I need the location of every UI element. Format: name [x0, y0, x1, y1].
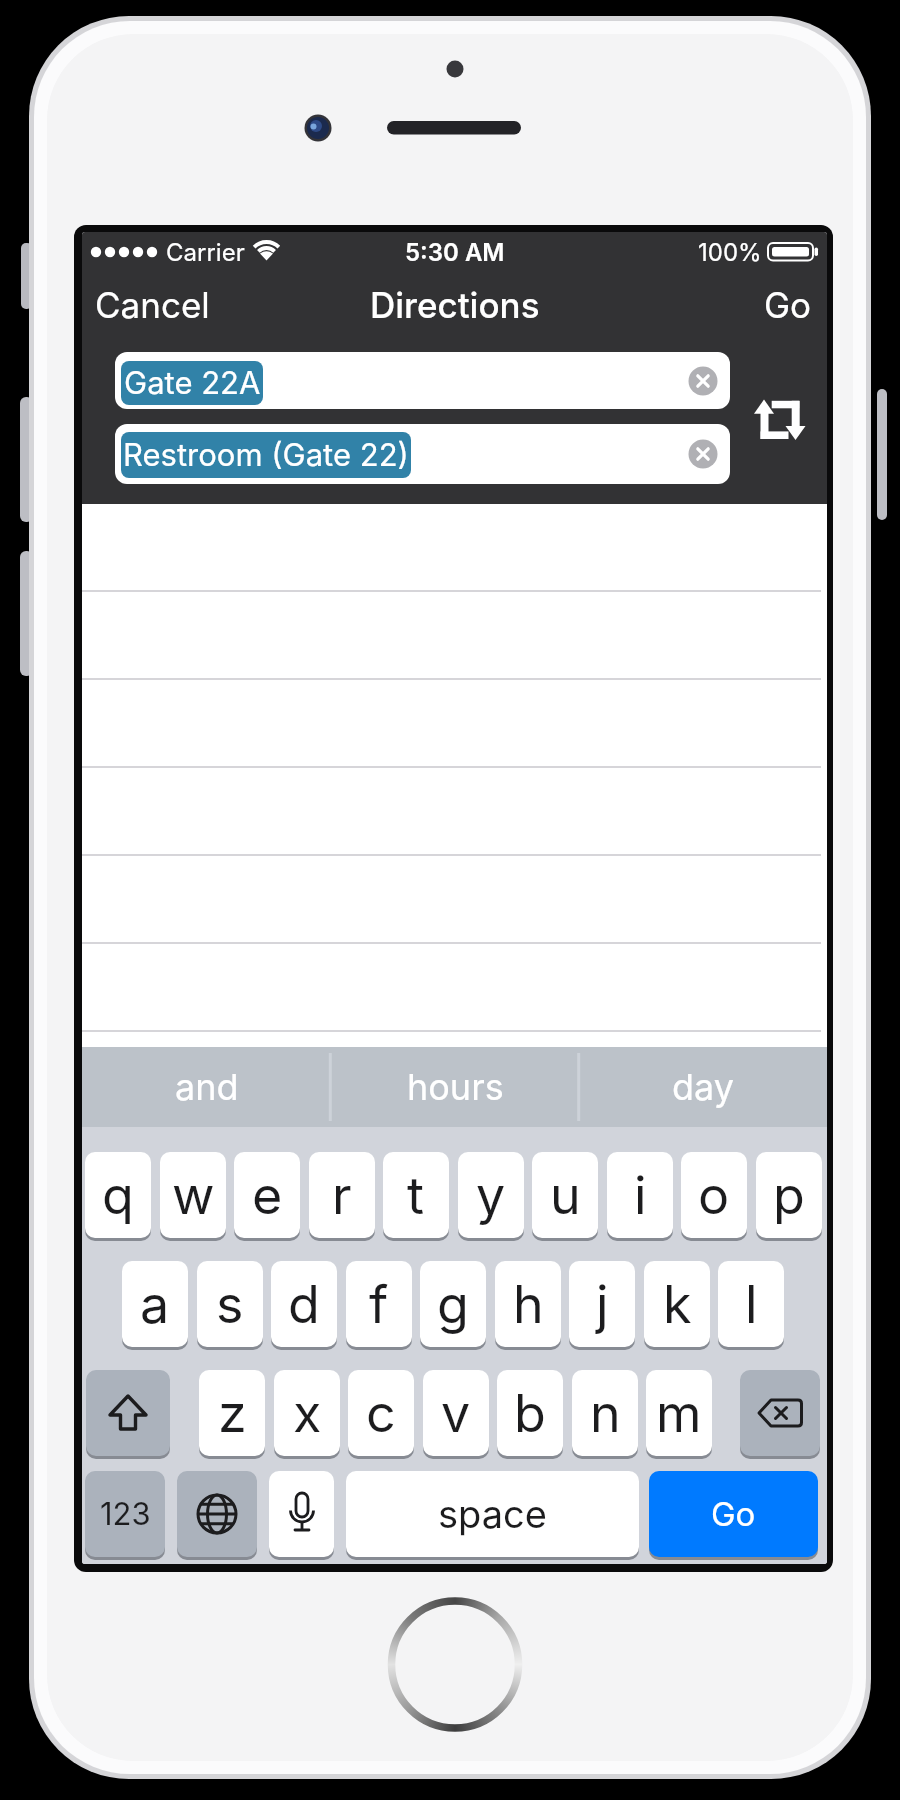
button[interactable]: b — [497, 1370, 563, 1456]
staticText: Go — [764, 284, 812, 324]
button[interactable]: u — [532, 1152, 598, 1238]
button[interactable]: o — [681, 1152, 747, 1238]
button[interactable]: h — [495, 1261, 561, 1347]
button[interactable]: Gate 22A — [115, 352, 730, 409]
button[interactable]: i — [607, 1152, 673, 1238]
button[interactable]: j — [569, 1261, 635, 1347]
staticText: o — [698, 1164, 730, 1227]
staticText: h — [513, 1273, 544, 1336]
staticText: c — [366, 1382, 396, 1445]
staticText: t — [407, 1164, 425, 1227]
staticText: b — [514, 1382, 546, 1445]
staticText: q — [102, 1164, 134, 1227]
button[interactable] — [269, 1471, 334, 1557]
button[interactable]: c — [348, 1370, 414, 1456]
staticText: e — [252, 1164, 283, 1227]
staticText: Carrier — [166, 238, 245, 267]
button[interactable]: f — [346, 1261, 412, 1347]
button[interactable]: d — [271, 1261, 337, 1347]
staticText: k — [663, 1273, 692, 1336]
button[interactable]: k — [644, 1261, 710, 1347]
staticText: u — [550, 1164, 581, 1227]
button[interactable] — [740, 1370, 820, 1456]
button[interactable]: t — [383, 1152, 449, 1238]
button[interactable]: w — [160, 1152, 226, 1238]
button[interactable]: hours — [331, 1047, 579, 1127]
staticText: y — [476, 1164, 506, 1227]
staticText: s — [216, 1273, 244, 1336]
staticText: f — [369, 1273, 389, 1336]
staticText: Restroom (Gate 22) — [123, 436, 409, 474]
staticText: l — [745, 1273, 758, 1336]
button[interactable]: r — [309, 1152, 375, 1238]
button[interactable]: v — [423, 1370, 489, 1456]
staticText: a — [140, 1273, 170, 1336]
staticText: and — [175, 1065, 239, 1109]
button[interactable]: z — [199, 1370, 265, 1456]
button[interactable]: Restroom (Gate 22) — [115, 424, 730, 484]
staticText: space — [438, 1491, 547, 1537]
staticText: Cancel — [95, 284, 210, 324]
button[interactable]: e — [234, 1152, 300, 1238]
staticText: Directions — [370, 284, 540, 324]
staticText: 100% — [698, 238, 762, 267]
button[interactable]: l — [718, 1261, 784, 1347]
staticText: Gate 22A — [124, 364, 261, 402]
staticText: g — [437, 1273, 469, 1336]
button[interactable]: y — [458, 1152, 524, 1238]
button[interactable]: Go — [764, 284, 812, 324]
button[interactable]: day — [579, 1047, 827, 1127]
staticText: p — [773, 1164, 805, 1227]
staticText: v — [441, 1382, 471, 1445]
button[interactable]: q — [85, 1152, 151, 1238]
button[interactable]: x — [274, 1370, 340, 1456]
staticText: n — [590, 1382, 621, 1445]
button[interactable]: s — [197, 1261, 263, 1347]
button[interactable] — [752, 396, 808, 444]
button[interactable]: g — [420, 1261, 486, 1347]
staticText: Go — [711, 1494, 756, 1534]
staticText: hours — [407, 1065, 504, 1109]
staticText: z — [218, 1382, 247, 1445]
button[interactable]: p — [756, 1152, 822, 1238]
staticText: day — [672, 1065, 734, 1109]
button[interactable]: m — [646, 1370, 712, 1456]
staticText: m — [656, 1382, 702, 1445]
staticText: i — [634, 1164, 647, 1227]
button[interactable]: n — [572, 1370, 638, 1456]
staticText: w — [172, 1164, 215, 1227]
button[interactable]: and — [82, 1047, 331, 1127]
staticText: d — [288, 1273, 320, 1336]
button[interactable]: space — [346, 1471, 639, 1557]
staticText: j — [596, 1273, 609, 1336]
staticText: x — [293, 1382, 322, 1445]
button[interactable] — [86, 1370, 170, 1456]
staticText: r — [332, 1164, 352, 1227]
staticText: 5:30 AM — [405, 238, 505, 267]
button[interactable]: Cancel — [95, 284, 210, 324]
button[interactable]: a — [122, 1261, 188, 1347]
staticText: 123 — [100, 1495, 151, 1533]
button[interactable]: 123 — [85, 1471, 165, 1557]
button[interactable] — [177, 1471, 257, 1557]
button[interactable]: Go — [649, 1471, 818, 1557]
